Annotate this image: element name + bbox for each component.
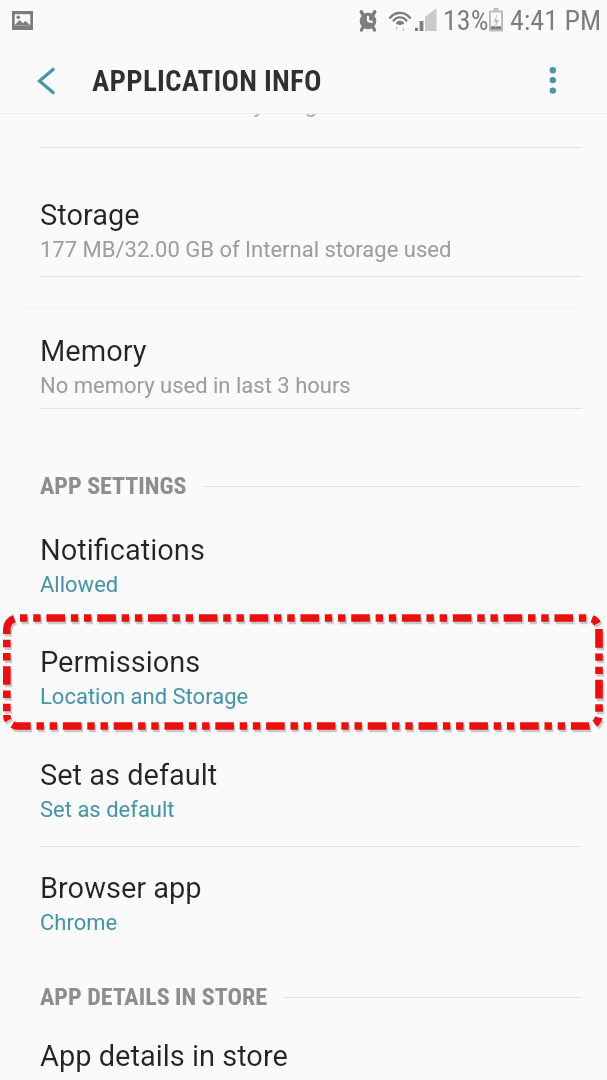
button[interactable]: Notifications	[40, 533, 582, 598]
staticText: 177 MB/32.00 GB of Internal storage used	[40, 237, 452, 263]
button[interactable]: Set as default	[40, 758, 582, 823]
button[interactable]: Permissions	[40, 645, 582, 710]
staticText: Set as default	[40, 797, 175, 823]
staticText: No memory used in last 3 hours	[40, 373, 351, 399]
staticText: Location and Storage	[40, 684, 249, 710]
staticText: Allowed	[40, 572, 119, 598]
staticText: Set as default	[40, 758, 218, 792]
button[interactable]: App details in store	[40, 1039, 582, 1073]
staticText: 4:41 PM	[510, 4, 602, 37]
button[interactable]: Storage	[40, 198, 582, 263]
staticText: APPLICATION INFO	[92, 64, 322, 98]
staticText: Notifications	[40, 533, 205, 567]
staticText: Storage	[40, 198, 140, 232]
staticText: 13%	[443, 4, 489, 37]
staticText: Chrome	[40, 910, 118, 936]
staticText: APP DETAILS IN STORE	[40, 983, 267, 1011]
button[interactable]: Memory	[40, 334, 582, 399]
button[interactable]: Navigate up	[12, 46, 80, 114]
button[interactable]: More options	[519, 46, 587, 114]
staticText: Battery usage	[194, 92, 329, 118]
staticText: Permissions	[40, 645, 201, 679]
staticText: APP SETTINGS	[40, 472, 187, 500]
staticText: Browser app	[40, 871, 202, 905]
staticText: Memory	[40, 334, 147, 368]
staticText: App details in store	[40, 1039, 288, 1073]
button[interactable]: Browser app	[40, 871, 582, 936]
